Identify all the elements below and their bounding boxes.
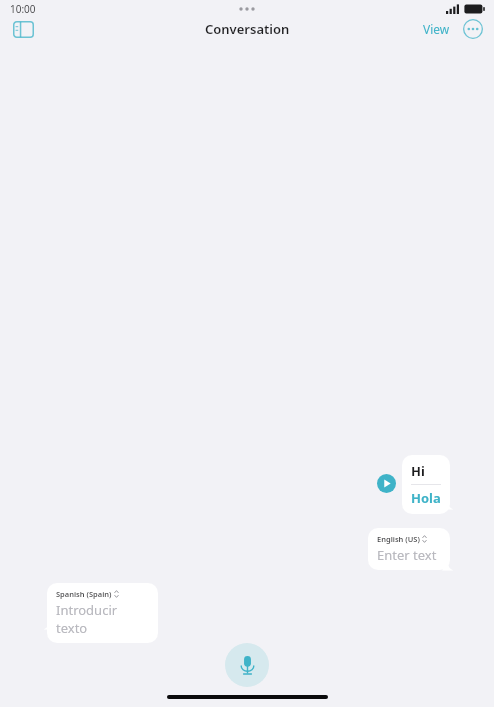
staticText: View: [423, 21, 450, 37]
staticText: Conversation: [205, 20, 290, 38]
button[interactable]: Record speech: [225, 643, 269, 687]
button[interactable]: English (US): [368, 528, 450, 570]
button[interactable]: More options: [460, 16, 486, 42]
staticText: Spanish (Spain): [56, 589, 112, 599]
staticText: Hi: [411, 462, 425, 480]
staticText: Introducir texto: [56, 601, 149, 637]
staticText: Enter text: [377, 546, 437, 564]
staticText: Hola: [411, 489, 441, 507]
button[interactable]: Hi: [402, 455, 450, 514]
button[interactable]: Toggle sidebar: [6, 12, 40, 46]
button[interactable]: Spanish (Spain): [47, 583, 158, 643]
button[interactable]: Play translation: [377, 474, 396, 493]
button[interactable]: View: [419, 17, 454, 41]
staticText: 10:00: [10, 2, 36, 16]
staticText: English (US): [377, 534, 420, 544]
